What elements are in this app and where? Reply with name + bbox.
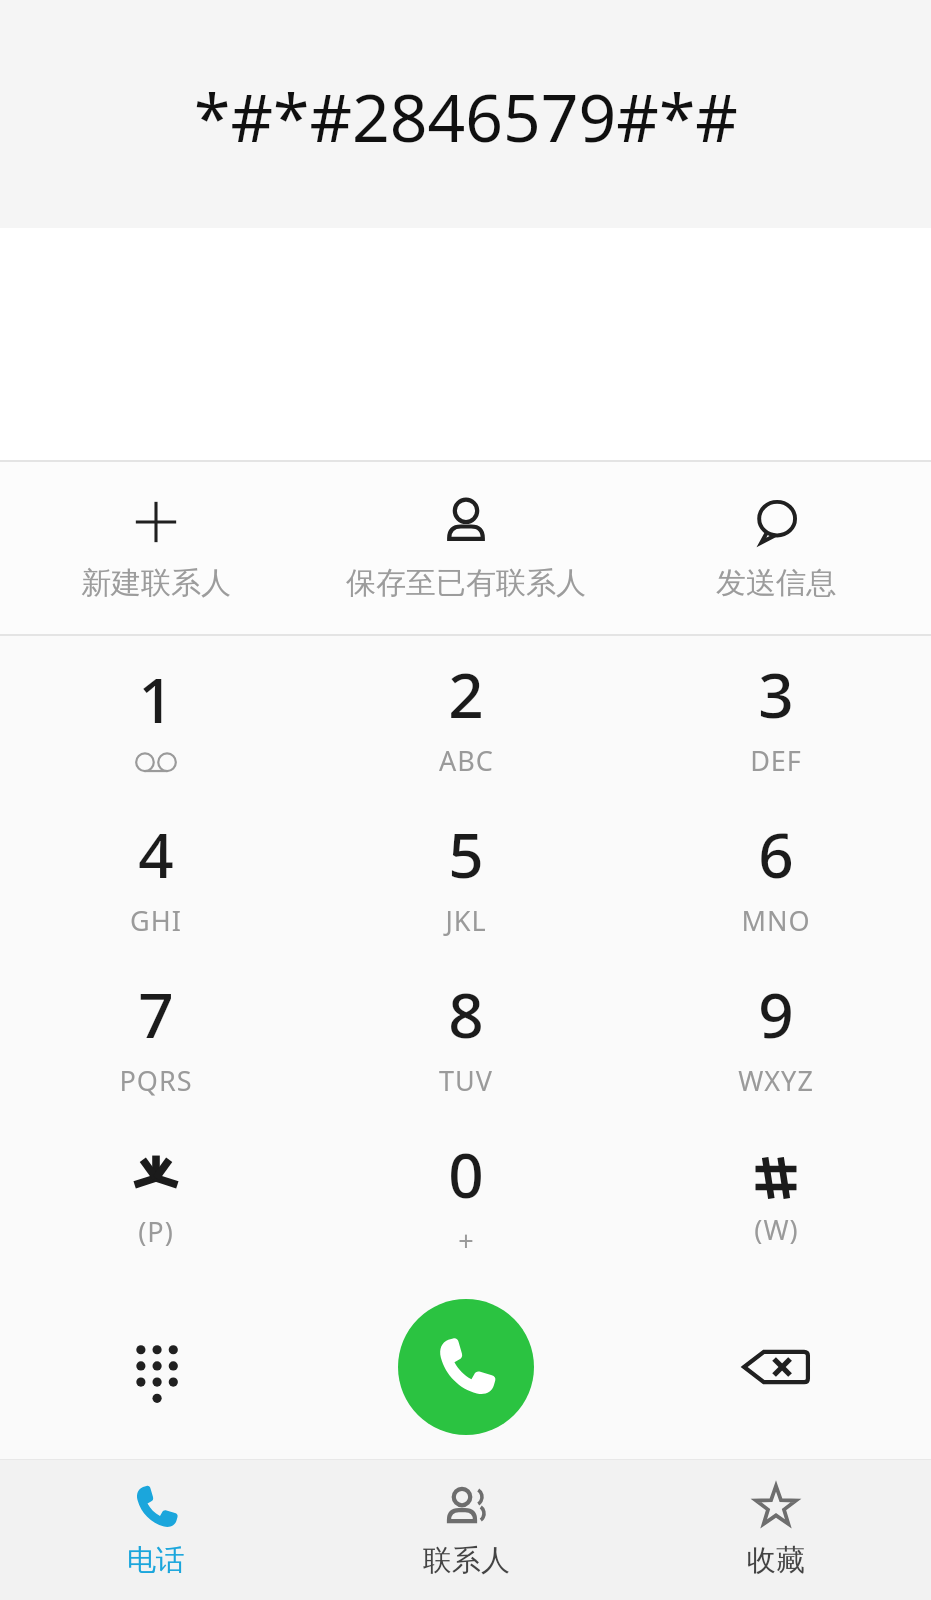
button[interactable]: 电话 xyxy=(0,1460,311,1600)
button[interactable]: 收藏 xyxy=(621,1460,931,1600)
button[interactable]: 6 xyxy=(621,795,931,955)
staticText: PQRS xyxy=(119,1062,193,1099)
staticText: 2 xyxy=(448,652,484,736)
staticText: TUV xyxy=(439,1062,493,1099)
staticText: (P) xyxy=(138,1213,174,1250)
staticText: 电话 xyxy=(127,1542,185,1579)
staticText: MNO xyxy=(741,902,811,939)
button[interactable]: 新建联系人 xyxy=(0,462,311,634)
staticText: 发送信息 xyxy=(716,564,836,602)
button[interactable]: 9 xyxy=(621,955,931,1115)
button[interactable]: 保存至已有联系人 xyxy=(311,462,621,634)
staticText: 3 xyxy=(758,652,794,736)
staticText: WXYZ xyxy=(738,1062,814,1099)
staticText: JKL xyxy=(445,902,487,939)
staticText: DEF xyxy=(750,742,802,779)
staticText: 8 xyxy=(448,972,484,1056)
staticText: 0 xyxy=(448,1132,484,1216)
staticText: 4 xyxy=(138,812,174,896)
staticText: ABC xyxy=(439,742,494,779)
button[interactable]: 7 xyxy=(0,955,311,1115)
staticText: 6 xyxy=(758,812,794,896)
button[interactable]: Keypad xyxy=(0,1275,311,1459)
button[interactable]: 5 xyxy=(311,795,621,955)
button[interactable]: 发送信息 xyxy=(621,462,931,634)
button[interactable]: (P) xyxy=(0,1115,311,1275)
staticText: GHI xyxy=(130,902,182,939)
button[interactable]: Call xyxy=(398,1299,534,1435)
button[interactable]: 3 xyxy=(621,636,931,795)
staticText: 1 xyxy=(138,657,174,741)
button[interactable]: Backspace xyxy=(621,1275,931,1459)
staticText: *#*#2846579#*# xyxy=(194,71,738,161)
button[interactable]: 8 xyxy=(311,955,621,1115)
staticText: 7 xyxy=(138,972,174,1056)
button[interactable]: 4 xyxy=(0,795,311,955)
staticText: 收藏 xyxy=(747,1542,805,1579)
staticText: 新建联系人 xyxy=(81,564,231,602)
staticText: + xyxy=(458,1222,475,1259)
staticText: 保存至已有联系人 xyxy=(346,564,586,602)
button[interactable]: 联系人 xyxy=(311,1460,621,1600)
staticText: 9 xyxy=(758,972,794,1056)
button[interactable]: 0 xyxy=(311,1115,621,1275)
staticText: 联系人 xyxy=(423,1542,510,1579)
button[interactable]: (W) xyxy=(621,1115,931,1275)
button[interactable]: 1 xyxy=(0,636,311,795)
staticText: 5 xyxy=(448,812,484,896)
staticText: (W) xyxy=(754,1211,799,1248)
button[interactable]: 2 xyxy=(311,636,621,795)
